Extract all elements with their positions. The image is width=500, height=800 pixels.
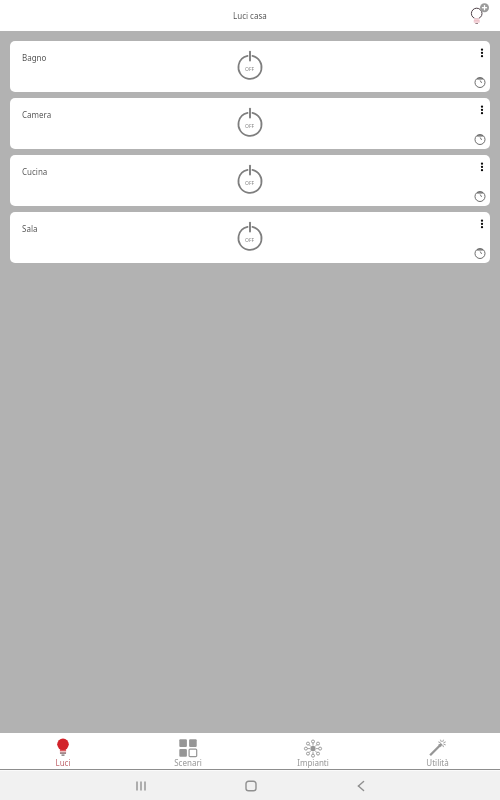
button[interactable]: Accendi luce <box>233 165 267 199</box>
button[interactable]: Altre opzioni <box>475 103 489 117</box>
button[interactable]: Camera <box>10 98 490 149</box>
staticText: Scenari <box>174 757 202 768</box>
button[interactable]: Timer <box>473 190 487 204</box>
button[interactable]: Altre opzioni <box>475 46 489 60</box>
button[interactable]: Impianti <box>250 733 375 769</box>
button[interactable]: Bagno <box>10 41 490 92</box>
button[interactable]: Cucina <box>10 155 490 206</box>
button[interactable]: Altre opzioni <box>475 217 489 231</box>
button[interactable]: Accendi luce <box>233 51 267 85</box>
staticText: OFF <box>245 180 255 187</box>
button[interactable]: Altre opzioni <box>475 160 489 174</box>
staticText: Impianti <box>297 757 329 768</box>
button[interactable]: Home <box>236 771 266 800</box>
staticText: OFF <box>245 237 255 244</box>
button[interactable]: Accendi luce <box>233 108 267 142</box>
staticText: OFF <box>245 66 255 73</box>
staticText: Sala <box>22 223 38 234</box>
staticText: OFF <box>245 123 255 130</box>
button[interactable]: Utilità <box>375 733 500 769</box>
button[interactable]: Timer <box>473 133 487 147</box>
staticText: Luci casa <box>233 10 267 21</box>
staticText: Bagno <box>22 52 47 63</box>
button[interactable]: Scenari <box>125 733 250 769</box>
staticText: Utilità <box>426 757 449 768</box>
button[interactable]: Recenti <box>126 771 156 800</box>
button[interactable]: Timer <box>473 247 487 261</box>
button[interactable]: Luci <box>0 733 125 769</box>
button[interactable]: Aggiungi luce <box>465 2 493 30</box>
button[interactable]: Sala <box>10 212 490 263</box>
staticText: Luci <box>55 757 71 768</box>
button[interactable]: Indietro <box>346 771 376 800</box>
staticText: Camera <box>22 109 52 120</box>
button[interactable]: Timer <box>473 76 487 90</box>
button[interactable]: Accendi luce <box>233 222 267 256</box>
staticText: Cucina <box>22 166 48 177</box>
